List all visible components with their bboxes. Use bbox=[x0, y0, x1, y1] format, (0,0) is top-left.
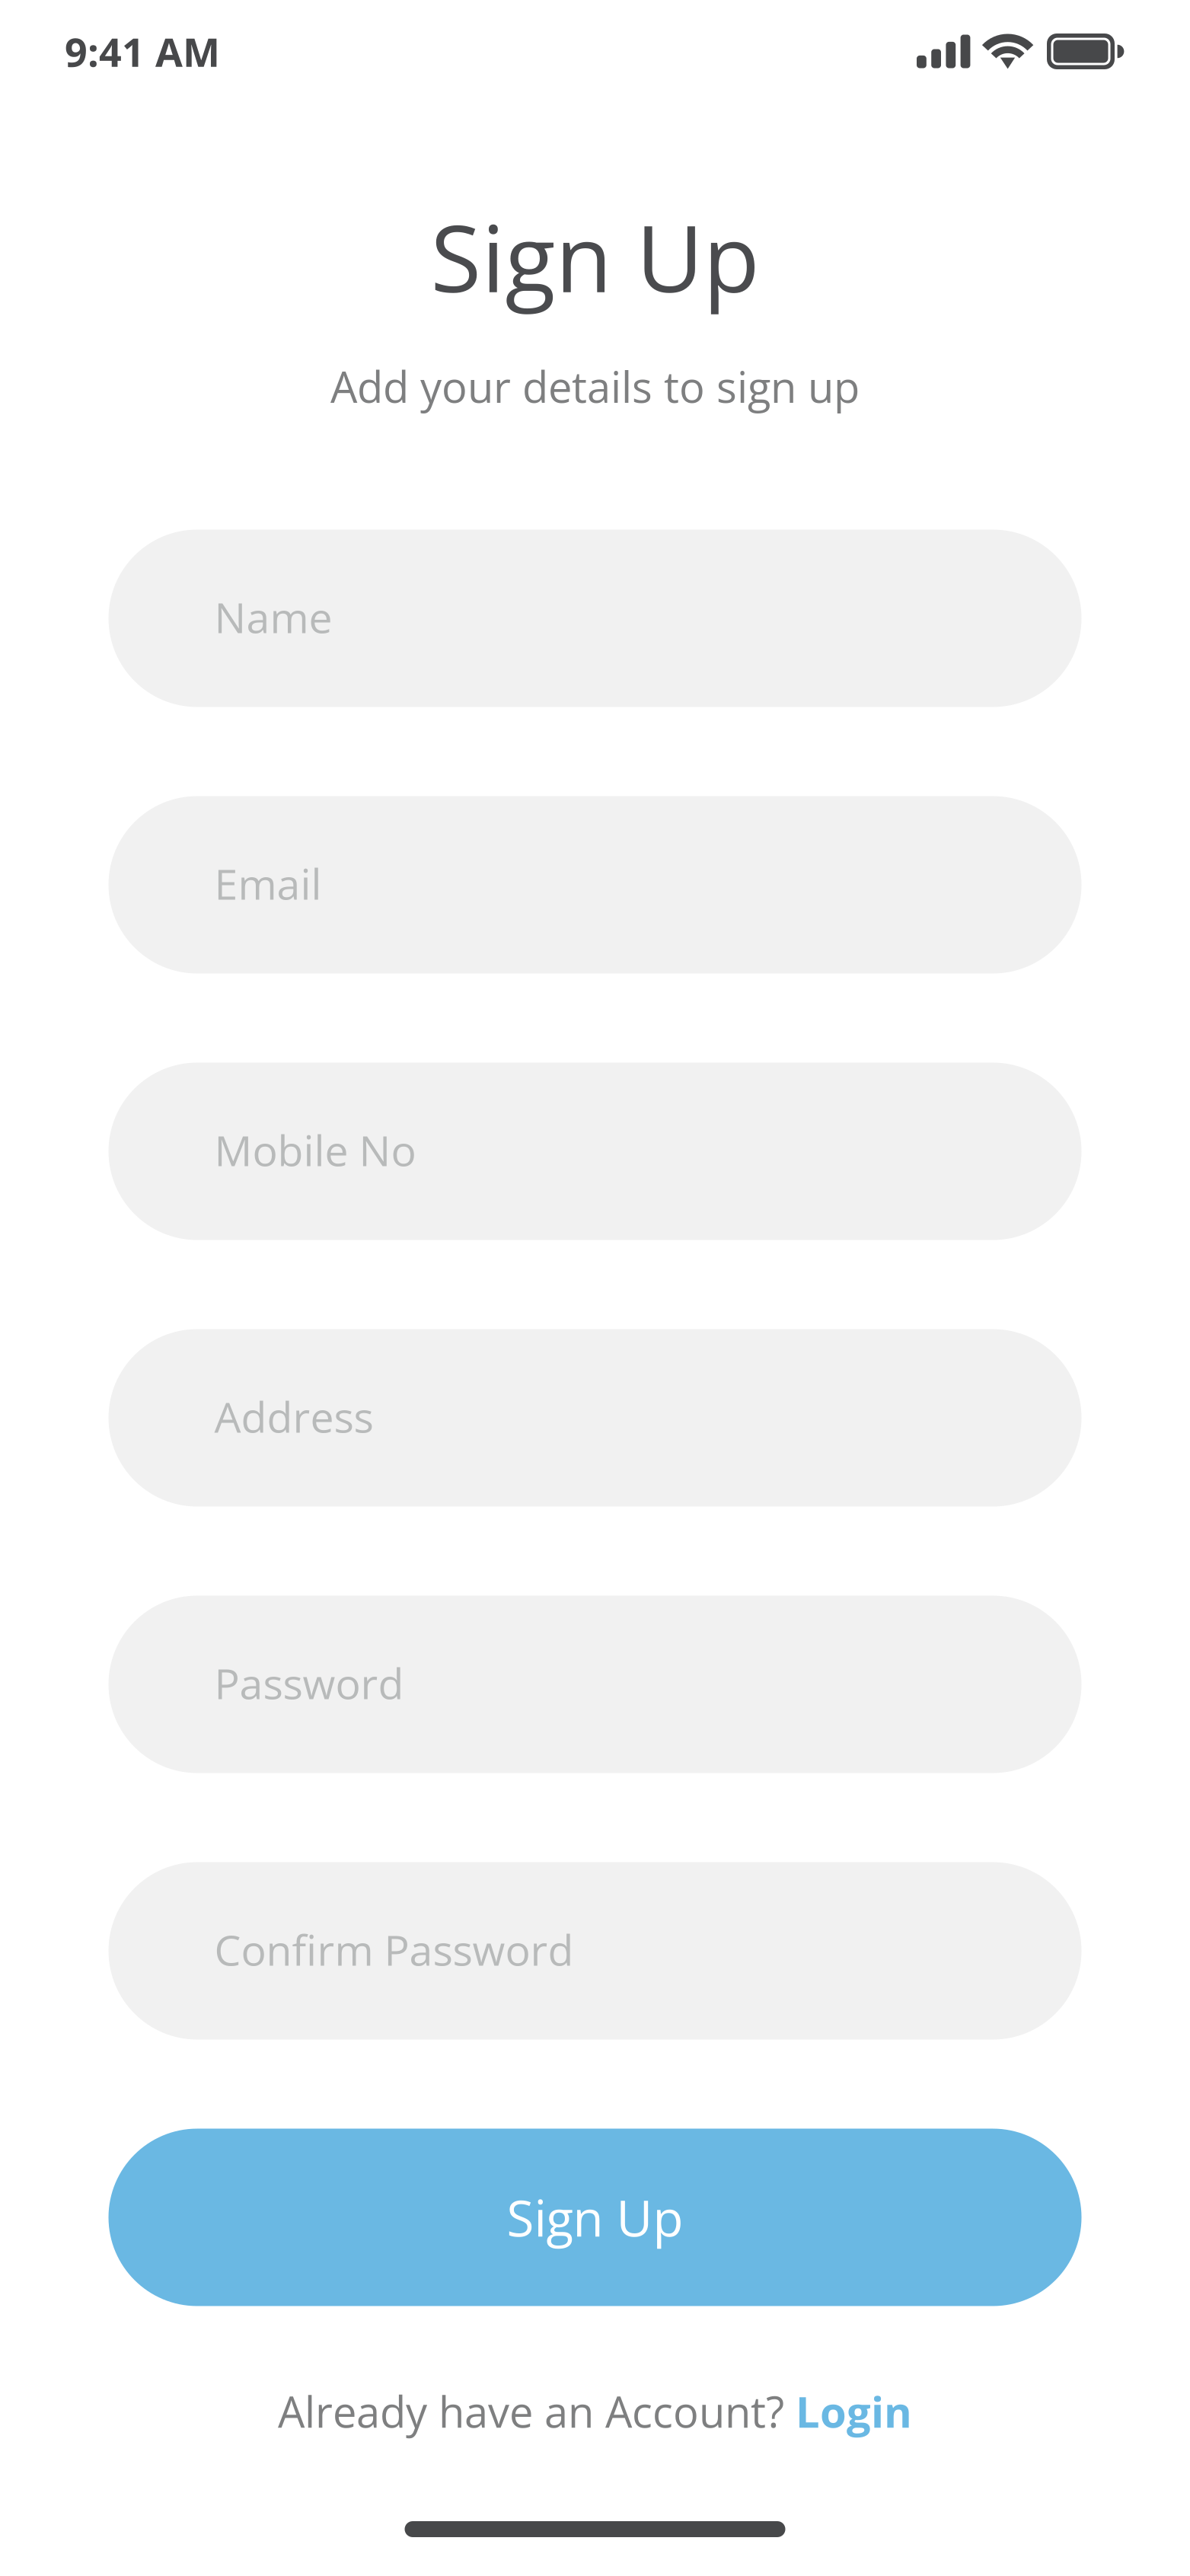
staticText: Mobile No bbox=[214, 1121, 416, 1179]
staticText: Address bbox=[214, 1388, 373, 1445]
button[interactable]: Name bbox=[108, 530, 1082, 707]
staticText: Name bbox=[214, 588, 332, 645]
button[interactable]: Confirm Password bbox=[108, 1862, 1082, 2040]
staticText: Sign Up bbox=[507, 2183, 683, 2251]
staticText: Password bbox=[214, 1654, 404, 1712]
staticText: Add your details to sign up bbox=[330, 357, 860, 415]
staticText: Email bbox=[214, 855, 322, 912]
staticText: Already have an Account? bbox=[278, 2382, 796, 2440]
button[interactable]: Sign Up bbox=[108, 2129, 1082, 2306]
button[interactable]: Login bbox=[796, 2382, 912, 2440]
staticText: Login bbox=[796, 2382, 912, 2440]
button[interactable]: Address bbox=[108, 1329, 1082, 1507]
button[interactable]: Mobile No bbox=[108, 1063, 1082, 1240]
button[interactable]: Email bbox=[108, 796, 1082, 974]
button[interactable]: Password bbox=[108, 1596, 1082, 1773]
staticText: Sign Up bbox=[431, 193, 759, 319]
staticText: 9:41 AM bbox=[65, 24, 220, 78]
staticText: Confirm Password bbox=[214, 1921, 574, 1978]
